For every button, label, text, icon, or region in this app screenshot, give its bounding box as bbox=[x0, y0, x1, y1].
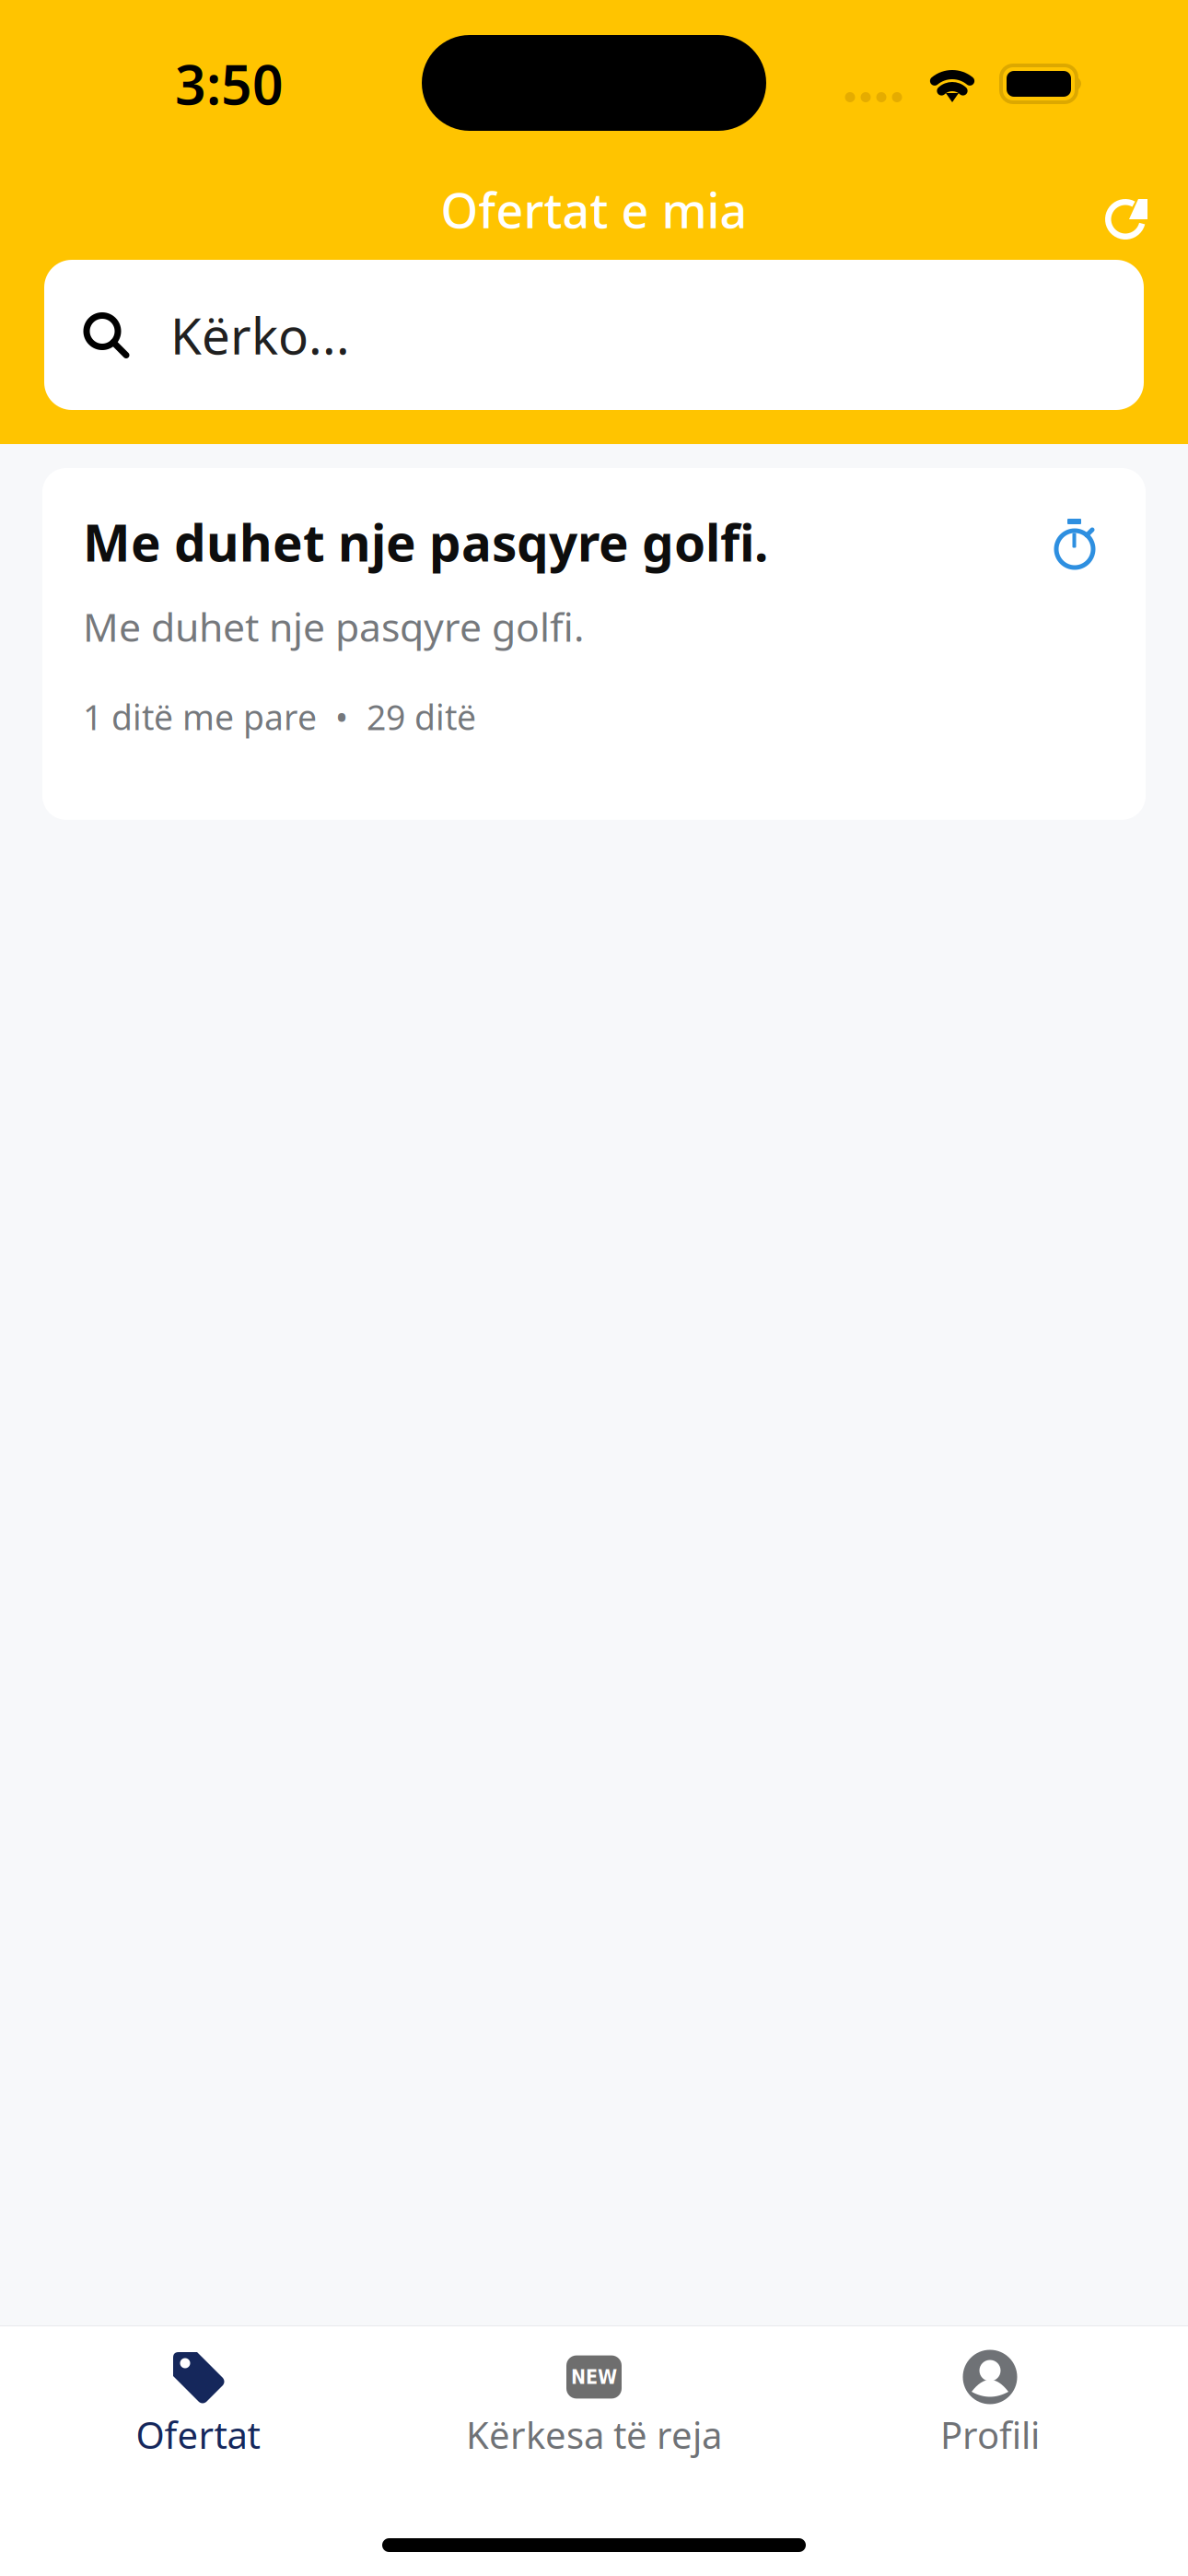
staticText: Ofertat bbox=[136, 2410, 260, 2459]
button[interactable]: Me duhet nje pasqyre golfi. bbox=[42, 468, 1146, 820]
staticText: Ofertat e mia bbox=[441, 178, 747, 241]
button[interactable]: Ofertat bbox=[0, 2326, 396, 2468]
staticText: 3:50 bbox=[175, 48, 284, 120]
button[interactable]: Kërko... bbox=[44, 260, 1144, 410]
staticText: Profili bbox=[940, 2410, 1040, 2459]
staticText: Kërkesa të reja bbox=[466, 2410, 722, 2459]
button[interactable]: NEW bbox=[396, 2326, 792, 2468]
staticText: Kërko... bbox=[170, 301, 350, 368]
staticText: NEW bbox=[571, 2366, 617, 2388]
button[interactable]: Profili bbox=[792, 2326, 1188, 2468]
button[interactable]: Refresh bbox=[1081, 177, 1171, 260]
staticText: 1 ditë me pare • 29 ditë bbox=[83, 694, 476, 740]
staticText: Me duhet nje pasqyre golfi. bbox=[83, 600, 584, 653]
staticText: Me duhet nje pasqyre golfi. bbox=[83, 509, 768, 575]
